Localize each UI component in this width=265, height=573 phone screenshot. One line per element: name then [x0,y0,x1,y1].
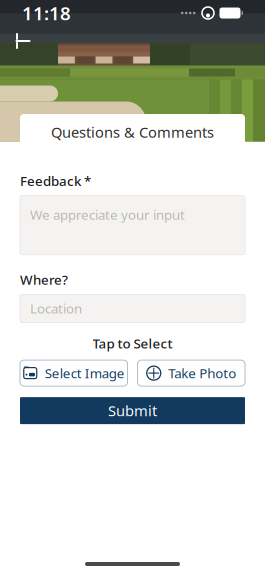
staticText: Tap to Select [92,334,172,352]
staticText: Location [30,300,82,317]
staticText: Take Photo [168,364,236,382]
staticText: Submit [108,401,157,420]
staticText: We appreciate your input [30,206,185,223]
staticText: 11:18 [22,1,71,25]
button[interactable]: Select Image [20,360,127,386]
staticText: Questions & Comments [51,122,214,142]
staticText: Select Image [45,364,125,382]
button[interactable]: Back [6,26,40,56]
button[interactable]: Take Photo [137,360,245,386]
staticText: Feedback * [20,172,91,190]
button[interactable]: Submit [20,397,245,424]
staticText: Where? [20,271,68,288]
